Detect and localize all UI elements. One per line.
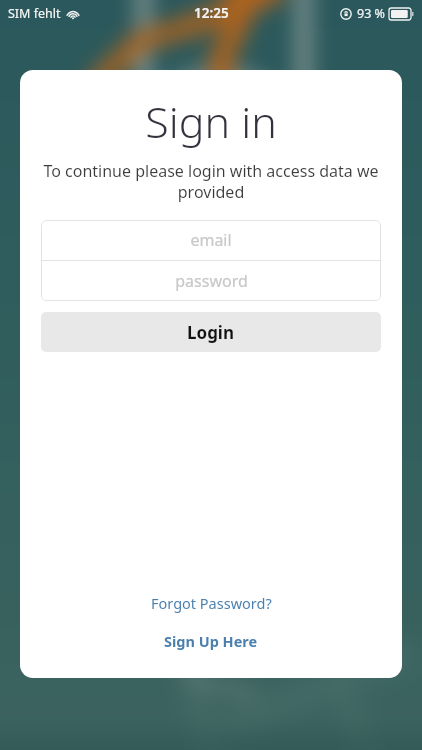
button[interactable]: Login bbox=[41, 312, 381, 352]
button[interactable]: Forgot Password? bbox=[137, 588, 286, 618]
staticText: SIM fehlt bbox=[8, 5, 61, 22]
staticText: To continue please login with access dat… bbox=[40, 160, 382, 203]
staticText: Sign Up Here bbox=[164, 631, 258, 651]
button[interactable]: Sign Up Here bbox=[150, 626, 272, 656]
staticText: 12:25 bbox=[194, 4, 229, 22]
staticText: email bbox=[190, 229, 232, 251]
staticText: Forgot Password? bbox=[151, 593, 272, 613]
staticText: password bbox=[175, 270, 248, 292]
staticText: 93 % bbox=[357, 5, 385, 22]
button[interactable]: password bbox=[41, 261, 381, 301]
button[interactable]: email bbox=[41, 220, 381, 260]
staticText: Sign in bbox=[145, 92, 277, 151]
staticText: Login bbox=[187, 321, 235, 344]
